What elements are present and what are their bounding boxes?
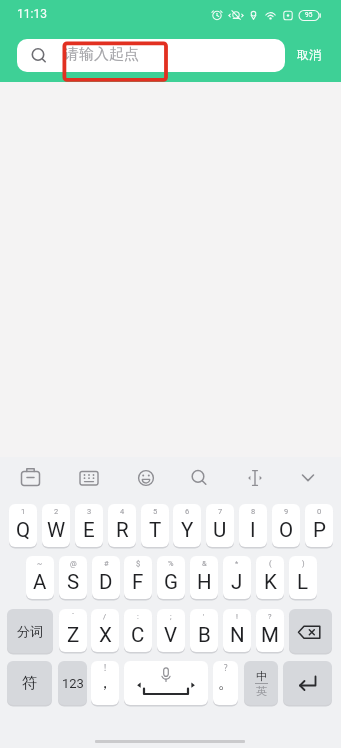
staticText: ( xyxy=(269,559,272,568)
staticText: ! xyxy=(236,612,238,621)
button[interactable]: 请输入起点 xyxy=(17,39,285,72)
button[interactable]: 分词 xyxy=(7,609,53,653)
staticText: L xyxy=(297,570,309,594)
staticText: H xyxy=(197,570,212,594)
staticText: 11:13 xyxy=(17,7,47,21)
button[interactable]: * xyxy=(223,556,251,599)
button[interactable]: ? xyxy=(256,609,284,652)
button[interactable]: ( xyxy=(256,556,284,599)
button[interactable]: 0 xyxy=(305,504,333,547)
button[interactable]: ! xyxy=(223,609,251,652)
staticText: 9 xyxy=(284,507,289,516)
staticText: $ xyxy=(136,559,141,568)
button[interactable]: 5 xyxy=(141,504,169,547)
staticText: 123 xyxy=(62,676,84,691)
button[interactable] xyxy=(183,462,215,494)
staticText: Y xyxy=(181,518,194,542)
staticText: ? xyxy=(224,662,228,673)
button[interactable]: 符 xyxy=(7,661,52,705)
staticText: 1 xyxy=(21,507,26,516)
button[interactable]: & xyxy=(190,556,218,599)
staticText: T xyxy=(149,518,162,542)
button[interactable]: @ xyxy=(59,556,87,599)
button[interactable]: ! xyxy=(91,661,119,705)
button[interactable]: ` xyxy=(59,609,87,652)
button[interactable]: 7 xyxy=(206,504,234,547)
staticText: M xyxy=(261,623,279,647)
staticText: Q xyxy=(16,518,31,542)
staticText: S xyxy=(67,570,80,594)
button[interactable]: 1 xyxy=(9,504,37,547)
staticText: 95 xyxy=(305,11,313,19)
button[interactable]: ? xyxy=(213,661,238,705)
button[interactable] xyxy=(292,462,324,494)
button[interactable]: 123 xyxy=(58,661,87,705)
staticText: 7 xyxy=(218,507,223,516)
button[interactable]: % xyxy=(157,556,185,599)
button[interactable] xyxy=(283,661,332,705)
staticText: A xyxy=(33,570,47,594)
button[interactable] xyxy=(239,462,271,494)
button[interactable]: 6 xyxy=(173,504,201,547)
staticText: R xyxy=(116,518,129,542)
button[interactable] xyxy=(124,661,208,705)
staticText: D xyxy=(99,570,113,594)
staticText: @ xyxy=(70,559,77,568)
staticText: / xyxy=(103,612,107,621)
button[interactable]: 4 xyxy=(108,504,136,547)
staticText: 取消 xyxy=(297,47,321,62)
staticText: W xyxy=(47,518,66,542)
staticText: 中 xyxy=(256,669,267,683)
staticText: 8 xyxy=(251,507,256,516)
button[interactable]: / xyxy=(91,609,119,652)
staticText: 5 xyxy=(153,507,158,516)
button[interactable] xyxy=(130,462,162,494)
staticText: G xyxy=(164,570,178,594)
staticText: 0 xyxy=(317,507,322,516)
button[interactable]: 2 xyxy=(42,504,70,547)
button[interactable]: # xyxy=(92,556,120,599)
staticText: 符 xyxy=(22,674,37,693)
staticText: C xyxy=(131,623,145,647)
staticText: ` xyxy=(72,612,75,621)
staticText: O xyxy=(279,518,294,542)
staticText: P xyxy=(313,518,326,542)
button[interactable]: 9 xyxy=(272,504,300,547)
staticText: U xyxy=(213,518,227,542)
button[interactable]: $ xyxy=(124,556,152,599)
staticText: 2 xyxy=(54,507,59,516)
staticText: * xyxy=(235,559,239,568)
staticText: Z xyxy=(67,623,80,647)
button[interactable]: ) xyxy=(289,556,317,599)
button[interactable]: ; xyxy=(157,609,185,652)
button[interactable] xyxy=(14,462,46,494)
staticText: B xyxy=(198,623,211,647)
staticText: 分词 xyxy=(17,623,43,639)
staticText: X xyxy=(99,623,112,647)
button[interactable] xyxy=(289,609,332,653)
staticText: E xyxy=(83,518,95,542)
button[interactable]: 3 xyxy=(75,504,103,547)
button[interactable]: 取消 xyxy=(291,39,327,69)
staticText: 3 xyxy=(87,507,92,516)
button[interactable]: ~ xyxy=(26,556,54,599)
staticText: ' xyxy=(203,612,205,621)
staticText: I xyxy=(250,518,256,542)
staticText: & xyxy=(202,559,207,568)
button[interactable]: ' xyxy=(190,609,218,652)
button[interactable] xyxy=(73,462,105,494)
staticText: 。 xyxy=(218,673,234,693)
button[interactable]: 8 xyxy=(239,504,267,547)
staticText: V xyxy=(164,623,178,647)
staticText: : xyxy=(137,612,139,621)
button[interactable]: 中 xyxy=(244,661,278,705)
staticText: # xyxy=(104,559,109,568)
staticText: N xyxy=(230,623,245,647)
staticText: ! xyxy=(104,662,107,673)
staticText: ; xyxy=(170,612,172,621)
staticText: % xyxy=(168,559,174,568)
staticText: 英 xyxy=(256,684,267,698)
staticText: ~ xyxy=(37,559,43,568)
button[interactable]: : xyxy=(124,609,152,652)
staticText: ) xyxy=(302,559,305,568)
